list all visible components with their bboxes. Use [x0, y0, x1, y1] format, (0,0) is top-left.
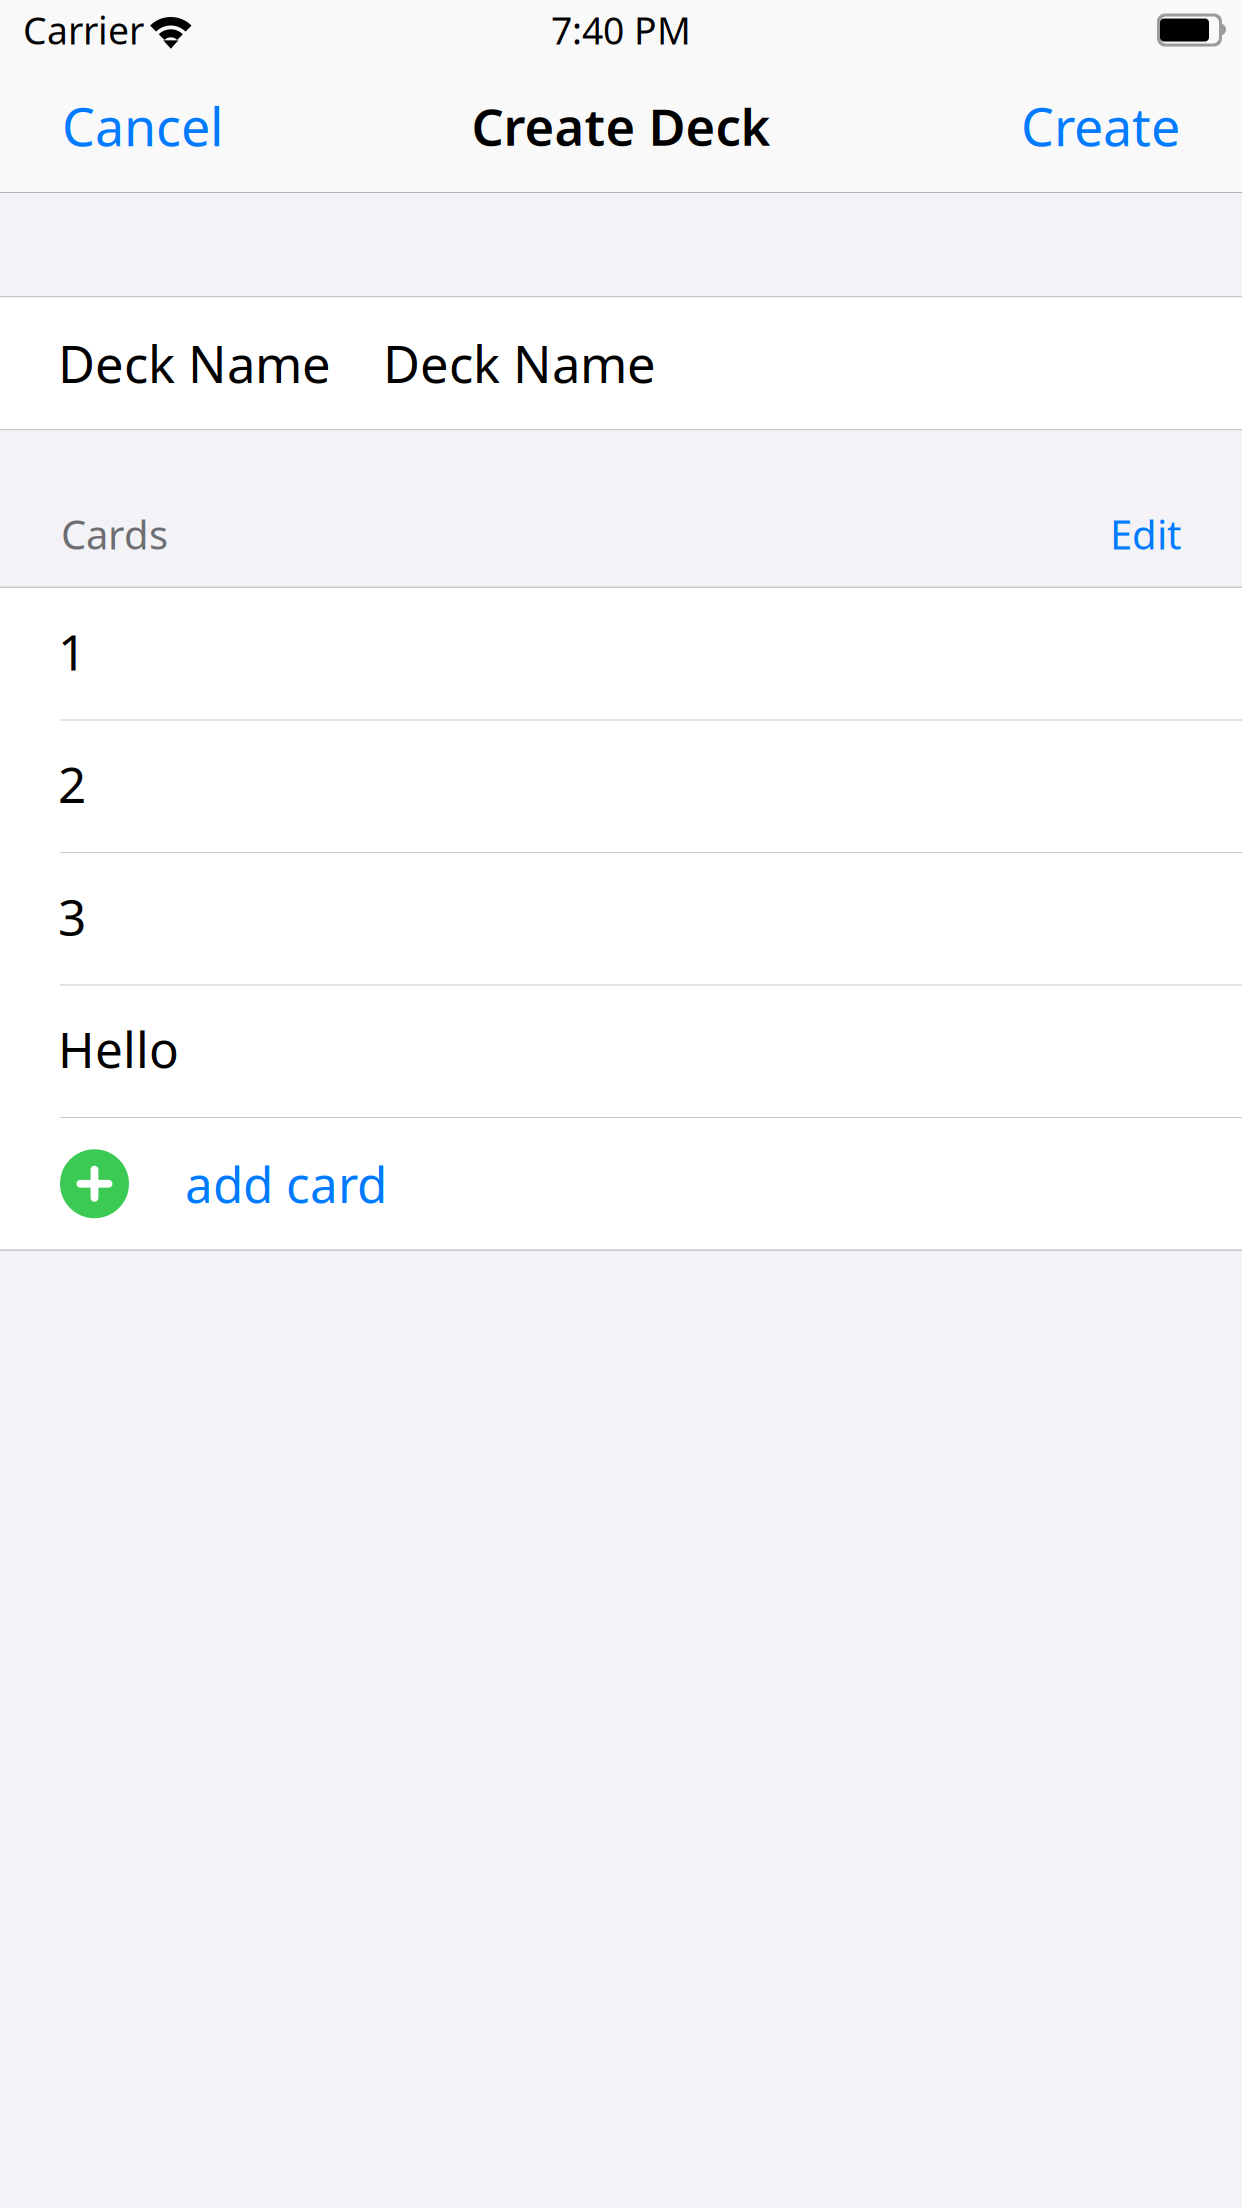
button[interactable]: Hello: [0, 985, 1242, 1117]
staticText: Cancel: [62, 91, 223, 161]
staticText: Edit: [1110, 507, 1181, 560]
button[interactable]: 3: [0, 853, 1242, 984]
button[interactable]: add card: [0, 1118, 1242, 1249]
staticText: Carrier: [23, 5, 144, 55]
button[interactable]: Create: [991, 60, 1242, 192]
staticText: Deck Name: [58, 330, 331, 397]
staticText: 2: [58, 751, 86, 816]
staticText: Cards: [61, 507, 168, 560]
button[interactable]: 1: [0, 588, 1242, 719]
button[interactable]: Edit: [1070, 483, 1181, 586]
staticText: 1: [58, 618, 86, 684]
staticText: Hello: [58, 1016, 179, 1081]
staticText: Create: [1021, 91, 1180, 161]
button[interactable]: 2: [0, 720, 1242, 852]
staticText: Deck Name: [383, 330, 656, 397]
button[interactable]: Cancel: [0, 60, 253, 192]
staticText: 7:40 PM: [551, 5, 691, 55]
staticText: 3: [58, 883, 86, 949]
staticText: Create Deck: [471, 92, 770, 160]
staticText: add card: [185, 1151, 387, 1216]
